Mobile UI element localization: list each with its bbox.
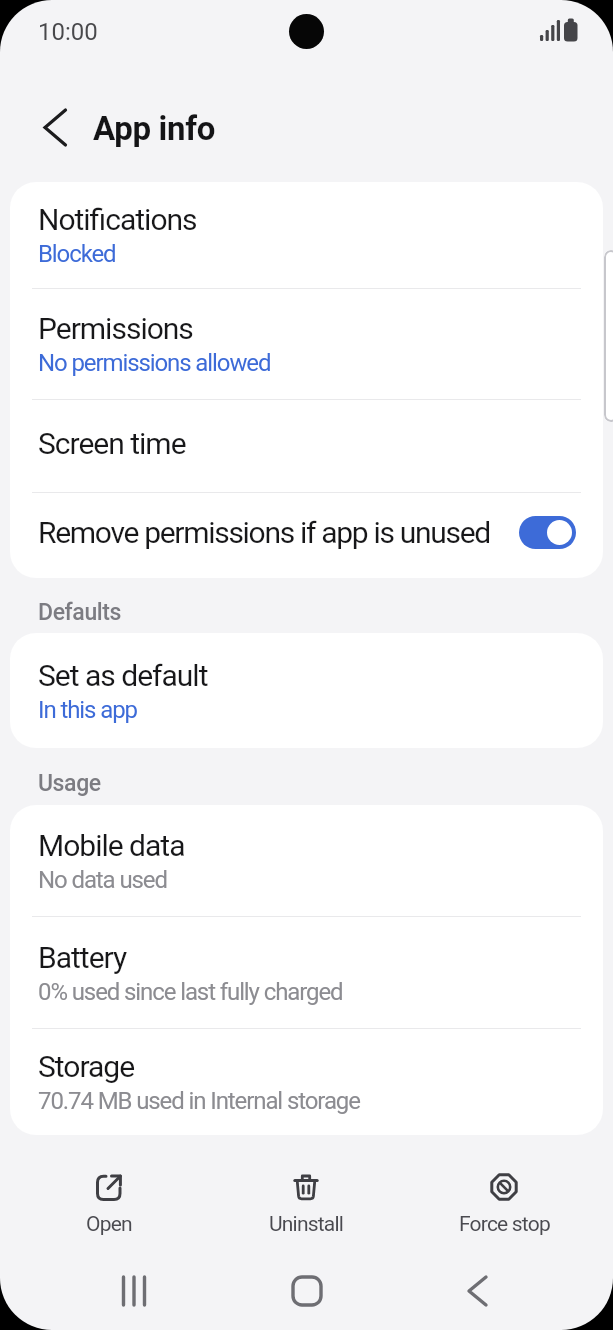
staticText: Screen time [38, 426, 186, 461]
button[interactable]: Permissions [10, 289, 603, 399]
staticText: Blocked [38, 240, 116, 268]
staticText: Mobile data [38, 828, 185, 863]
staticText: Permissions [38, 311, 193, 346]
staticText: App info [93, 109, 216, 148]
staticText: In this app [38, 696, 137, 724]
staticText: Open [86, 1212, 132, 1237]
staticText: Battery [38, 940, 127, 975]
staticText: No permissions allowed [38, 349, 271, 377]
staticText: Uninstall [269, 1212, 344, 1237]
staticText: 70.74 MB used in Internal storage [38, 1087, 360, 1115]
button[interactable]: Mobile data [10, 805, 603, 916]
button[interactable]: Battery [10, 917, 603, 1028]
staticText: Notifications [38, 202, 197, 237]
button[interactable] [0, 104, 68, 152]
staticText: Force stop [459, 1212, 550, 1237]
staticText: 10:00 [38, 18, 98, 46]
staticText: Usage [38, 770, 101, 797]
button[interactable]: Storage [10, 1029, 603, 1135]
button[interactable]: Notifications [10, 182, 603, 288]
button[interactable]: Force stop [405, 1159, 603, 1237]
button[interactable]: Screen time [10, 400, 603, 492]
button[interactable]: Set as default [10, 633, 603, 748]
button[interactable]: Remove permissions if app is unused [10, 493, 603, 578]
button[interactable] [452, 1265, 504, 1317]
staticText: Defaults [38, 599, 121, 626]
button[interactable] [281, 1265, 333, 1317]
staticText: Storage [38, 1049, 135, 1084]
staticText: 0% used since last fully charged [38, 978, 343, 1006]
staticText: Set as default [38, 658, 208, 693]
button[interactable]: Open [10, 1159, 207, 1237]
button[interactable] [108, 1265, 160, 1317]
staticText: No data used [38, 866, 167, 894]
staticText: Remove permissions if app is unused [38, 515, 519, 550]
button[interactable]: Uninstall [207, 1159, 405, 1237]
